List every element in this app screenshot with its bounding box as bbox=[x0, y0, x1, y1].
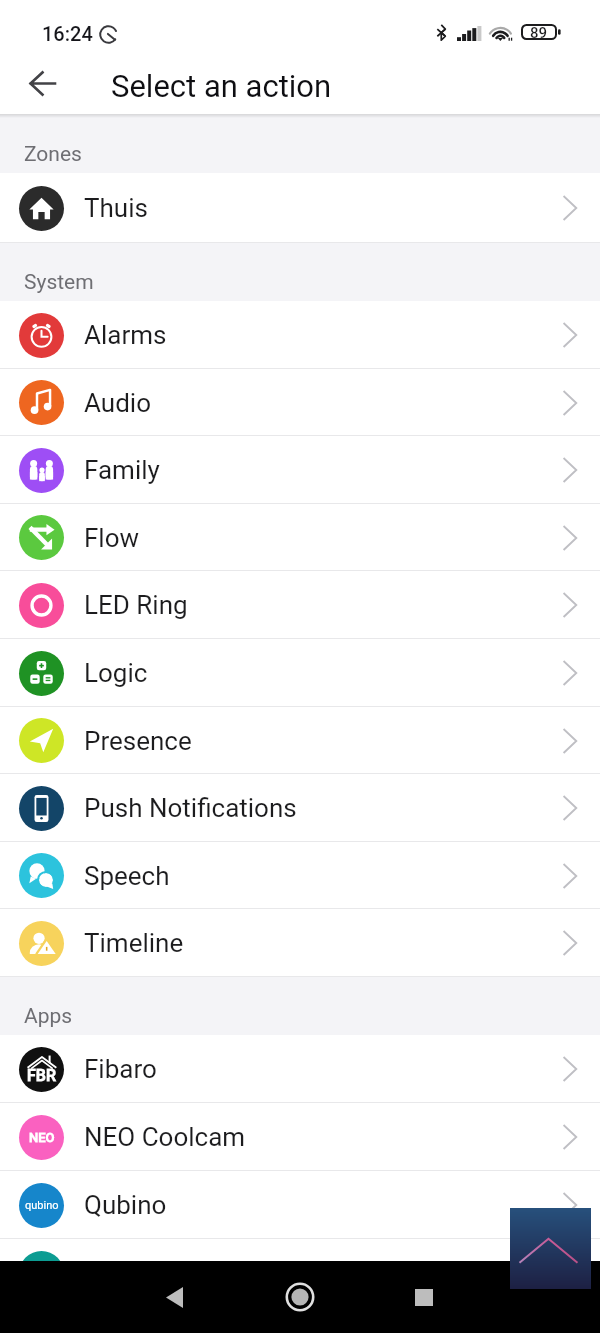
staticText: Presence bbox=[84, 726, 192, 756]
staticText: qubino bbox=[25, 1199, 59, 1212]
staticText: Flow bbox=[84, 523, 140, 553]
staticText: FBR bbox=[27, 1066, 56, 1085]
staticText: Thuis bbox=[84, 193, 148, 223]
staticText: Apps bbox=[24, 1004, 73, 1029]
button[interactable]: Speech bbox=[0, 842, 600, 909]
button[interactable]: Thuis bbox=[0, 173, 600, 243]
staticText: LED Ring bbox=[84, 590, 188, 620]
button[interactable]: Presence bbox=[0, 707, 600, 774]
button[interactable]: Back bbox=[18, 59, 66, 107]
staticText: Audio bbox=[84, 388, 151, 418]
staticText: NEO bbox=[29, 1130, 55, 1145]
staticText: Push Notifications bbox=[84, 793, 297, 823]
staticText: Timeline bbox=[84, 928, 184, 958]
button[interactable]: qubino bbox=[0, 1171, 600, 1239]
button[interactable]: Logic bbox=[0, 639, 600, 707]
button[interactable]: NEO bbox=[0, 1103, 600, 1171]
button[interactable]: Audio bbox=[0, 369, 600, 436]
button[interactable]: Expand overlay bbox=[510, 1208, 591, 1289]
staticText: Zones bbox=[24, 142, 82, 167]
staticText: Logic bbox=[84, 658, 148, 688]
button[interactable]: Push Notifications bbox=[0, 774, 600, 842]
button[interactable]: Back bbox=[144, 1267, 204, 1327]
staticText: Fibaro bbox=[84, 1054, 157, 1084]
staticText: Family bbox=[84, 455, 160, 485]
staticText: NEO Coolcam bbox=[84, 1122, 246, 1152]
button[interactable]: Alarms bbox=[0, 301, 600, 369]
button[interactable]: Family bbox=[0, 436, 600, 504]
button[interactable]: Flow bbox=[0, 504, 600, 571]
button[interactable]: Recents bbox=[394, 1267, 454, 1327]
button[interactable]: LED Ring bbox=[0, 571, 600, 639]
staticText: Select an action bbox=[111, 68, 332, 104]
button[interactable]: Timeline bbox=[0, 909, 600, 977]
button[interactable]: Home bbox=[270, 1267, 330, 1327]
staticText: System bbox=[24, 270, 94, 295]
button[interactable]: Next bbox=[0, 1239, 600, 1261]
staticText: Speech bbox=[84, 861, 170, 891]
staticText: 16:24 bbox=[42, 22, 93, 45]
button[interactable]: FBR bbox=[0, 1035, 600, 1103]
staticText: Qubino bbox=[84, 1190, 167, 1220]
staticText: 89 bbox=[530, 24, 548, 42]
staticText: Alarms bbox=[84, 320, 167, 350]
